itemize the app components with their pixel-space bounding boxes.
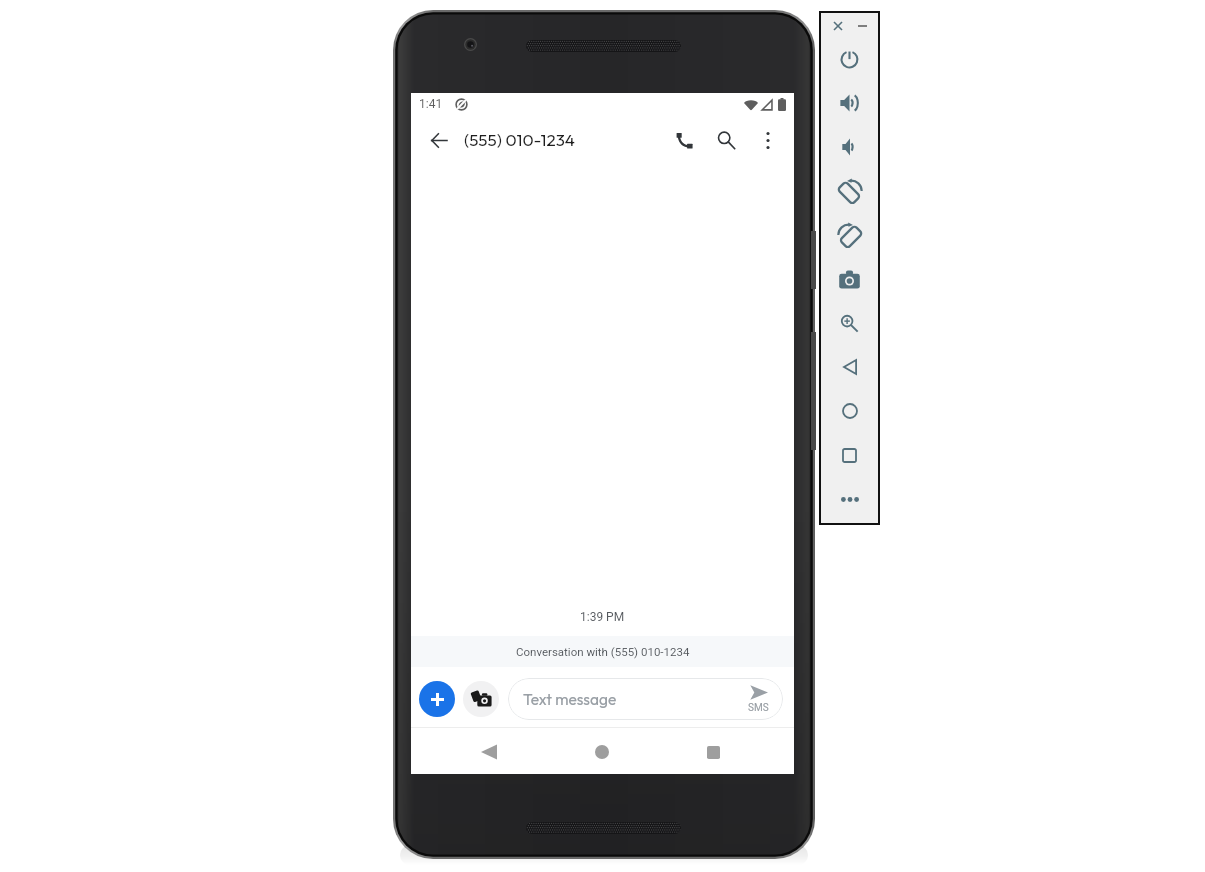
button[interactable]: Camera <box>463 681 499 717</box>
button[interactable]: More options <box>747 119 789 161</box>
button[interactable]: Navigate up <box>418 119 460 161</box>
button[interactable]: Zoom <box>819 301 880 345</box>
button[interactable]: More <box>819 477 880 521</box>
staticText: 1:39 PM <box>580 610 625 624</box>
button[interactable]: Power <box>819 37 880 81</box>
button[interactable]: Take screenshot <box>819 257 880 301</box>
button[interactable]: Home <box>819 389 880 433</box>
button[interactable]: Overview <box>819 433 880 477</box>
button[interactable]: Add attachment <box>419 681 455 717</box>
button[interactable]: Call <box>663 119 705 161</box>
button[interactable]: Send SMS <box>740 679 776 719</box>
button[interactable]: Rotate right <box>819 213 880 257</box>
button[interactable]: Search <box>705 119 747 161</box>
button[interactable]: Recent apps <box>690 729 736 775</box>
button[interactable]: Volume up <box>819 81 880 125</box>
staticText: (555) 010-1234 <box>464 129 575 150</box>
button[interactable]: Minimize <box>854 18 870 34</box>
button[interactable]: Volume down <box>819 125 880 169</box>
staticText: Text message <box>523 689 617 709</box>
button[interactable]: Back <box>466 729 512 775</box>
button[interactable]: Rotate left <box>819 169 880 213</box>
button[interactable]: Back <box>819 345 880 389</box>
button[interactable]: Home <box>579 729 625 775</box>
staticText: SMS <box>748 702 769 714</box>
staticText: 1:41 <box>419 97 443 111</box>
button[interactable]: Close <box>830 18 846 34</box>
staticText: Conversation with (555) 010-1234 <box>516 645 690 658</box>
button[interactable]: Text message <box>508 678 783 720</box>
